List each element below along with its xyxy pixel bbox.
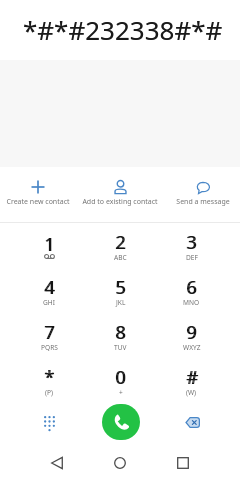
button[interactable]: # bbox=[156, 359, 227, 404]
staticText: 9 bbox=[186, 320, 197, 345]
staticText: 7 bbox=[45, 320, 56, 345]
staticText: Create new contact bbox=[6, 197, 70, 207]
staticText: JKL bbox=[116, 298, 126, 307]
staticText: + bbox=[119, 388, 123, 397]
button[interactable]: 2 bbox=[85, 224, 156, 269]
staticText: 1 bbox=[44, 232, 55, 257]
staticText: TUV bbox=[114, 343, 127, 352]
button[interactable]: Home bbox=[88, 447, 151, 478]
staticText: 3 bbox=[187, 230, 198, 255]
staticText: Add to existing contact bbox=[82, 197, 158, 207]
staticText: 9 bbox=[187, 320, 198, 345]
staticText: 2 bbox=[116, 230, 127, 255]
button[interactable]: Call bbox=[102, 404, 140, 440]
button[interactable]: Back bbox=[26, 447, 88, 478]
staticText: # bbox=[186, 365, 198, 390]
staticText: 0 bbox=[115, 365, 126, 390]
button[interactable]: Create new contact bbox=[0, 167, 80, 222]
button[interactable]: 0 bbox=[85, 359, 156, 404]
button[interactable]: Show dialpad bbox=[30, 404, 68, 440]
staticText: 3 bbox=[186, 230, 197, 255]
staticText: 7 bbox=[44, 320, 55, 345]
staticText: 5 bbox=[115, 275, 126, 300]
staticText: * bbox=[45, 365, 55, 390]
staticText: *#*#232338#*# bbox=[23, 12, 223, 47]
staticText: 8 bbox=[116, 320, 127, 345]
staticText: 2 bbox=[115, 230, 126, 255]
staticText: 8 bbox=[115, 320, 126, 345]
button[interactable]: 3 bbox=[156, 224, 227, 269]
staticText: *#*#232338#*# bbox=[23, 12, 223, 47]
staticText: (W) bbox=[186, 388, 197, 397]
staticText: PQRS bbox=[41, 343, 58, 352]
button[interactable]: * bbox=[13, 359, 85, 404]
staticText: 1 bbox=[45, 232, 56, 257]
staticText: Send a message bbox=[176, 197, 230, 207]
button[interactable]: 4 bbox=[13, 269, 85, 314]
button[interactable]: Add to existing contact bbox=[80, 167, 160, 222]
button[interactable]: Send a message bbox=[160, 167, 240, 222]
staticText: GHI bbox=[43, 298, 55, 307]
staticText: 4 bbox=[44, 275, 55, 300]
staticText: WXYZ bbox=[183, 343, 201, 352]
button[interactable]: 1 bbox=[13, 224, 85, 269]
staticText: 6 bbox=[187, 275, 198, 300]
staticText: 4 bbox=[45, 275, 56, 300]
button[interactable]: 7 bbox=[13, 314, 85, 359]
button[interactable]: 5 bbox=[85, 269, 156, 314]
staticText: ABC bbox=[114, 253, 127, 262]
button[interactable]: 9 bbox=[156, 314, 227, 359]
staticText: # bbox=[187, 365, 199, 390]
button[interactable]: Recents bbox=[151, 447, 214, 478]
staticText: 5 bbox=[116, 275, 127, 300]
staticText: DEF bbox=[186, 253, 198, 262]
staticText: (P) bbox=[45, 388, 53, 397]
button[interactable]: 6 bbox=[156, 269, 227, 314]
staticText: * bbox=[44, 365, 54, 390]
staticText: 0 bbox=[116, 365, 127, 390]
staticText: 6 bbox=[186, 275, 197, 300]
button[interactable]: 8 bbox=[85, 314, 156, 359]
staticText: MNO bbox=[183, 298, 200, 307]
button[interactable]: Backspace bbox=[173, 404, 211, 440]
